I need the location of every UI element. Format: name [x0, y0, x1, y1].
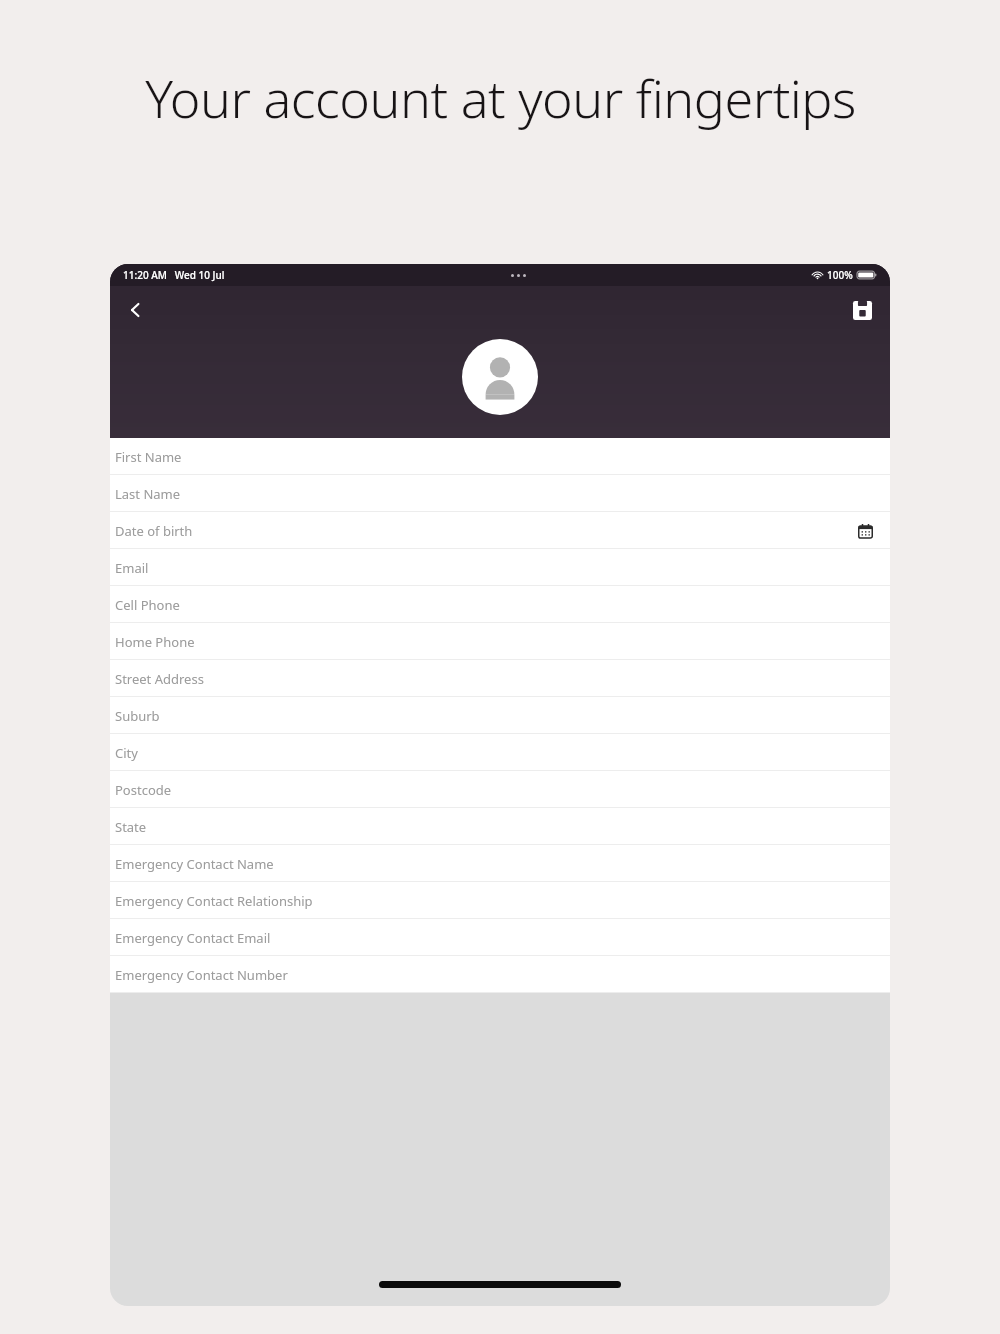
button[interactable]: Emergency Contact Number — [110, 956, 890, 993]
button[interactable]: Home Phone — [110, 623, 890, 660]
staticText: Suburb — [115, 707, 160, 725]
button[interactable]: Emergency Contact Relationship — [110, 882, 890, 919]
staticText: Emergency Contact Number — [115, 966, 288, 984]
button[interactable]: Last Name — [110, 475, 890, 512]
staticText: Emergency Contact Relationship — [115, 892, 313, 910]
staticText: City — [115, 744, 138, 762]
staticText: Your account at your fingertips — [145, 62, 856, 133]
button[interactable]: Back — [116, 290, 156, 330]
staticText: Date of birth — [115, 522, 193, 540]
button[interactable]: Email — [110, 549, 890, 586]
staticText: First Name — [115, 448, 182, 466]
staticText: Street Address — [115, 670, 204, 688]
staticText: Emergency Contact Name — [115, 855, 274, 873]
button[interactable]: Pick date — [852, 518, 878, 544]
button[interactable]: Profile photo — [462, 339, 538, 415]
staticText: 11:20 AM Wed 10 Jul — [123, 268, 225, 282]
button[interactable]: Save — [842, 290, 882, 330]
staticText: Cell Phone — [115, 596, 180, 614]
button[interactable]: Date of birth — [110, 512, 890, 549]
staticText: Email — [115, 559, 149, 577]
button[interactable]: State — [110, 808, 890, 845]
staticText: Postcode — [115, 781, 172, 799]
button[interactable]: Postcode — [110, 771, 890, 808]
button[interactable]: First Name — [110, 438, 890, 475]
button[interactable]: Emergency Contact Email — [110, 919, 890, 956]
staticText: 100% — [827, 268, 853, 282]
button[interactable]: Suburb — [110, 697, 890, 734]
button[interactable]: Street Address — [110, 660, 890, 697]
staticText: Last Name — [115, 485, 181, 503]
button[interactable]: City — [110, 734, 890, 771]
staticText: Emergency Contact Email — [115, 929, 271, 947]
staticText: State — [115, 818, 147, 836]
button[interactable]: Cell Phone — [110, 586, 890, 623]
button[interactable]: Emergency Contact Name — [110, 845, 890, 882]
staticText: Home Phone — [115, 633, 195, 651]
